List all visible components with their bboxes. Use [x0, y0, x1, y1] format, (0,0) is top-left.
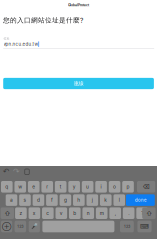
- staticText: k: [104, 197, 107, 203]
- staticText: c: [46, 210, 49, 216]
- button[interactable]: i: [95, 181, 107, 193]
- staticText: z: [19, 210, 22, 216]
- staticText: m: [100, 210, 104, 216]
- staticText: ⌨: [140, 223, 149, 230]
- staticText: q: [5, 184, 8, 190]
- staticText: j: [92, 197, 93, 203]
- staticText: o: [113, 184, 116, 190]
- button[interactable]: y: [68, 181, 80, 193]
- button[interactable]: ?: [136, 207, 148, 219]
- button[interactable]: GlobalProtect: [48, 0, 108, 10]
- button[interactable]: Paste: [23, 168, 31, 176]
- button[interactable]: q: [1, 181, 13, 193]
- staticText: 🎤: [31, 223, 38, 230]
- button[interactable]: k: [100, 194, 112, 206]
- staticText: v: [60, 210, 63, 216]
- staticText: ⌫: [143, 183, 150, 190]
- staticText: done: [135, 197, 146, 203]
- button[interactable]: m: [96, 207, 107, 219]
- button[interactable]: Shift: [142, 207, 156, 219]
- button[interactable]: e: [28, 181, 39, 193]
- staticText: b: [73, 210, 76, 216]
- button[interactable]: c: [42, 207, 54, 219]
- button[interactable]: g: [60, 194, 71, 206]
- button[interactable]: Shift: [1, 207, 14, 219]
- button[interactable]: ,: [109, 207, 121, 219]
- staticText: ⊕: [2, 222, 11, 231]
- staticText: 連線: [73, 80, 83, 87]
- button[interactable]: .: [123, 207, 134, 219]
- staticText: h: [77, 197, 80, 203]
- button[interactable]: l: [113, 194, 125, 206]
- staticText: p: [126, 184, 129, 190]
- button[interactable]: Hide keyboard: [137, 221, 152, 232]
- staticText: 您的入口網站位址是什麼?: [3, 16, 83, 24]
- button[interactable]: Next keyboard: [1, 221, 12, 232]
- button[interactable]: z: [15, 207, 27, 219]
- staticText: ⇧: [146, 209, 152, 217]
- button[interactable]: Undo: [3, 167, 11, 175]
- staticText: .: [128, 210, 129, 216]
- staticText: 123: [17, 224, 23, 229]
- button[interactable]: 連線: [3, 78, 154, 89]
- staticText: ↶: [3, 167, 10, 176]
- staticText: GlobalProtect: [68, 3, 89, 7]
- staticText: u: [86, 184, 89, 190]
- staticText: i: [101, 184, 102, 190]
- button[interactable]: d: [33, 194, 44, 206]
- button[interactable]: Dictate: [29, 221, 40, 232]
- staticText: a: [10, 197, 13, 203]
- staticText: r: [46, 184, 48, 190]
- button[interactable]: x: [29, 207, 40, 219]
- button[interactable]: b: [69, 207, 81, 219]
- staticText: ↷: [13, 167, 20, 176]
- staticText: vpn.ncu.edu.tw: [4, 42, 39, 47]
- staticText: w: [18, 184, 22, 190]
- staticText: ⇧: [4, 209, 10, 217]
- staticText: 位址: [4, 37, 10, 40]
- button[interactable]: a: [6, 194, 17, 206]
- button[interactable]: s: [19, 194, 31, 206]
- button[interactable]: Delete: [137, 181, 155, 193]
- button[interactable]: p: [122, 181, 134, 193]
- button[interactable]: 123: [15, 221, 26, 232]
- staticText: 123: [124, 224, 130, 229]
- staticText: y: [73, 184, 76, 190]
- button[interactable]: n: [82, 207, 94, 219]
- button[interactable]: o: [109, 181, 120, 193]
- staticText: t: [60, 184, 62, 190]
- staticText: ,: [115, 210, 116, 216]
- button[interactable]: Redo: [13, 167, 21, 175]
- staticText: x: [33, 210, 36, 216]
- button[interactable]: h: [73, 194, 85, 206]
- staticText: f: [51, 197, 53, 203]
- staticText: l: [119, 197, 120, 203]
- staticText: g: [64, 197, 67, 203]
- button[interactable]: v: [55, 207, 67, 219]
- button[interactable]: w: [14, 181, 26, 193]
- button[interactable]: u: [82, 181, 93, 193]
- staticText: ?: [141, 210, 143, 216]
- staticText: d: [37, 197, 40, 203]
- button[interactable]: done: [126, 194, 155, 206]
- staticText: n: [87, 210, 90, 216]
- staticText: e: [32, 184, 35, 190]
- button[interactable]: j: [86, 194, 98, 206]
- staticText: [75, 211, 81, 239]
- button[interactable]: r: [41, 181, 53, 193]
- staticText: s: [23, 197, 26, 203]
- button[interactable]: t: [55, 181, 66, 193]
- button[interactable]: f: [46, 194, 58, 206]
- button[interactable]: 123: [120, 221, 134, 232]
